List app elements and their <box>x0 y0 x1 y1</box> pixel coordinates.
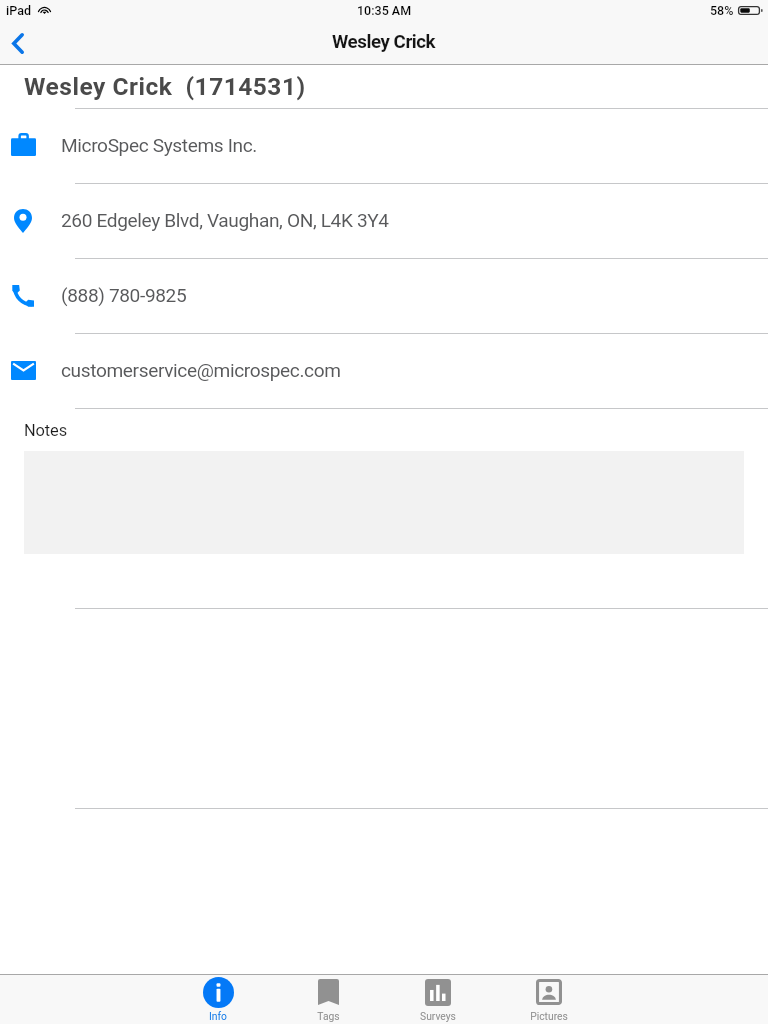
staticText: Notes <box>24 421 68 440</box>
staticText: Info <box>209 1010 227 1022</box>
button[interactable]: Email <box>0 334 768 409</box>
staticText: 58% <box>710 3 734 18</box>
staticText: 10:35 AM <box>357 3 412 18</box>
button[interactable]: Phone <box>0 259 768 334</box>
staticText: (888) 780-9825 <box>61 284 187 306</box>
button[interactable]: Info <box>163 975 273 1024</box>
button[interactable]: Back <box>0 21 40 65</box>
staticText: Tags <box>317 1010 340 1022</box>
staticText: iPad <box>6 3 31 18</box>
button[interactable]: Pictures <box>494 975 604 1024</box>
button[interactable]: Address <box>0 184 768 259</box>
staticText: Wesley Crick (1714531) <box>24 72 306 101</box>
button[interactable]: Surveys <box>383 975 493 1024</box>
staticText: Pictures <box>530 1010 568 1022</box>
staticText: Wesley Crick <box>332 31 436 53</box>
staticText: Surveys <box>420 1010 456 1022</box>
staticText: 260 Edgeley Blvd, Vaughan, ON, L4K 3Y4 <box>61 209 389 231</box>
button[interactable]: Tags <box>273 975 383 1024</box>
button[interactable]: Company <box>0 109 768 184</box>
staticText: MicroSpec Systems Inc. <box>61 134 257 156</box>
staticText: customerservice@microspec.com <box>61 359 341 381</box>
